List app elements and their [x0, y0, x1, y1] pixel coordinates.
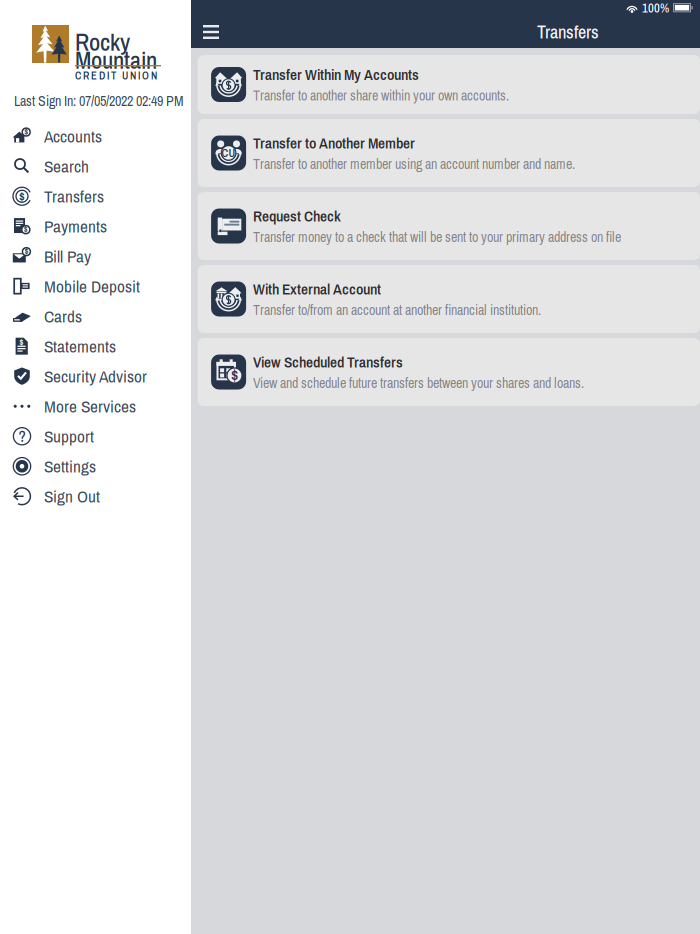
staticText: Mobile Deposit — [44, 275, 140, 298]
staticText: Search — [44, 155, 89, 178]
staticText: C R E D I T U N I O N — [75, 68, 157, 83]
staticText: Transfer to another member using an acco… — [253, 154, 575, 173]
staticText: View Scheduled Transfers — [253, 352, 403, 372]
staticText: Sign Out — [44, 485, 100, 508]
staticText: $ — [231, 364, 238, 386]
button[interactable]: $ — [0, 211, 191, 241]
staticText: Settings — [44, 455, 96, 478]
button[interactable]: $ — [0, 121, 191, 151]
staticText: $ — [19, 187, 25, 205]
staticText: Request Check — [253, 206, 341, 226]
button[interactable]: Search — [0, 151, 191, 181]
button[interactable]: $ — [0, 331, 191, 361]
staticText: More Services — [44, 395, 136, 418]
staticText: With External Account — [253, 279, 381, 299]
staticText: $ — [24, 246, 28, 257]
staticText: Rocky — [75, 26, 130, 58]
button[interactable]: CU — [198, 119, 700, 187]
staticText: $ — [24, 126, 28, 138]
staticText: Statements — [44, 335, 116, 358]
staticText: Transfer money to a check that will be s… — [253, 227, 621, 246]
button[interactable]: $ — [198, 338, 700, 406]
button[interactable]: Request Check — [198, 192, 700, 260]
staticText: $ — [19, 336, 23, 349]
staticText: CU — [222, 145, 236, 161]
staticText: Support — [44, 425, 94, 448]
staticText: $ — [24, 224, 28, 235]
staticText: Payments — [44, 215, 107, 238]
staticText: View and schedule future transfers betwe… — [253, 373, 584, 392]
button[interactable]: Mobile Deposit — [0, 271, 191, 301]
button[interactable]: With External Account — [198, 265, 700, 333]
button[interactable]: Menu — [191, 16, 231, 48]
staticText: ? — [18, 425, 25, 447]
button[interactable]: Settings — [0, 451, 191, 481]
button[interactable]: Transfer Within My Accounts — [198, 55, 700, 114]
staticText: Transfer to/from an account at another f… — [253, 300, 541, 319]
staticText: Mountain — [75, 44, 157, 76]
button[interactable]: Security Advisor — [0, 361, 191, 391]
staticText: Accounts — [44, 125, 102, 148]
staticText: Bill Pay — [44, 245, 91, 268]
staticText: Last Sign In: 07/05/2022 02:49 PM — [14, 91, 184, 110]
staticText: Cards — [44, 305, 82, 328]
button[interactable]: ? — [0, 421, 191, 451]
button[interactable]: $ — [0, 241, 191, 271]
button[interactable]: $ — [0, 181, 191, 211]
button[interactable]: Sign Out — [0, 481, 191, 511]
staticText: Security Advisor — [44, 365, 147, 388]
staticText: Transfer to another share within your ow… — [253, 86, 509, 105]
staticText: Transfer to Another Member — [253, 133, 415, 153]
staticText: Transfers — [537, 20, 599, 44]
button[interactable]: More Services — [0, 391, 191, 421]
staticText: Transfers — [44, 185, 104, 208]
staticText: 100% — [642, 0, 669, 17]
button[interactable]: Cards — [0, 301, 191, 331]
staticText: Transfer Within My Accounts — [253, 64, 419, 85]
